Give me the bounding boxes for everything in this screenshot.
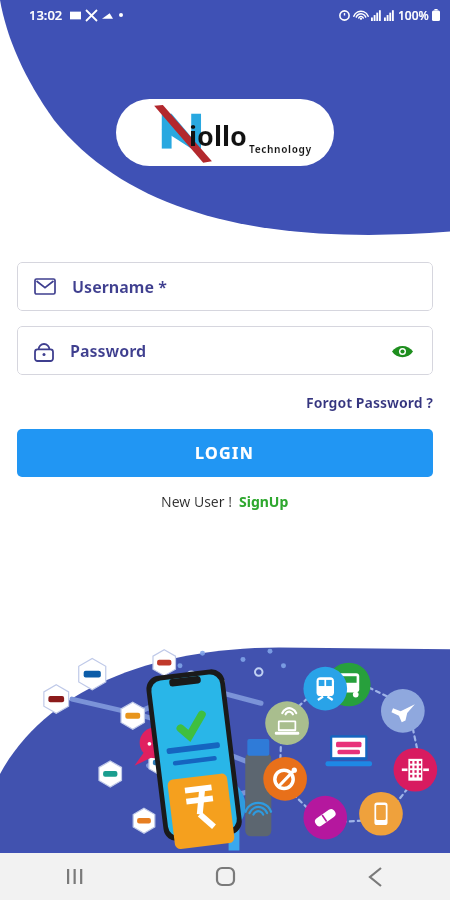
staticText: Technology — [249, 142, 312, 156]
button[interactable]: SignUp — [239, 492, 289, 511]
button[interactable]: Password — [17, 326, 433, 375]
button[interactable]: Recents — [0, 853, 150, 900]
staticText: LOGIN — [195, 442, 255, 464]
staticText: 100% — [398, 7, 429, 23]
staticText: Forgot Password ? — [306, 393, 433, 412]
button[interactable]: Username * — [17, 262, 433, 311]
staticText: SignUp — [239, 492, 289, 511]
staticText: iollo — [189, 117, 247, 154]
staticText: New User ! — [161, 492, 232, 511]
button[interactable]: Show password — [389, 338, 415, 364]
staticText: 13:02 — [29, 6, 63, 24]
staticText: Password — [70, 340, 147, 362]
button[interactable]: Home — [150, 853, 300, 900]
button[interactable]: Forgot Password ? — [306, 393, 433, 412]
button[interactable]: Back — [300, 853, 450, 900]
button[interactable]: LOGIN — [17, 429, 433, 477]
staticText: Username * — [72, 276, 167, 298]
